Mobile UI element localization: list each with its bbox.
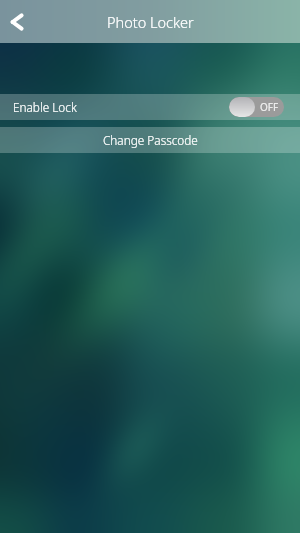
staticText: Enable Lock — [13, 99, 77, 115]
staticText: Change Passcode — [103, 132, 198, 148]
button[interactable]: Enable Lock — [0, 94, 300, 120]
button[interactable]: Back — [0, 3, 38, 41]
staticText: OFF — [260, 100, 279, 114]
button[interactable]: Enable Lock toggle, off — [229, 97, 284, 117]
button[interactable]: Change Passcode — [0, 127, 300, 153]
staticText: Photo Locker — [107, 12, 194, 32]
